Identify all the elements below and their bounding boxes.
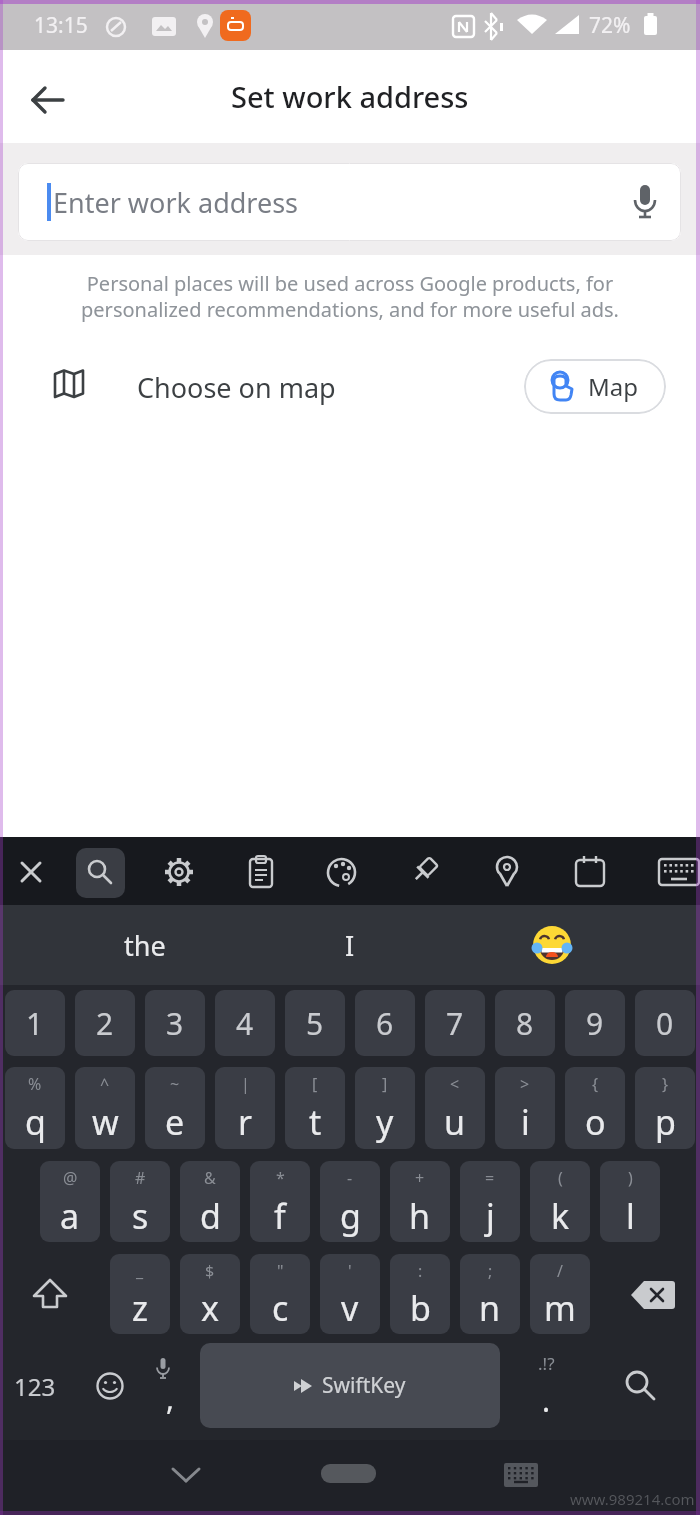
staticText: ; bbox=[488, 1260, 493, 1282]
button[interactable] bbox=[80, 1344, 140, 1428]
staticText: " bbox=[277, 1260, 284, 1282]
button[interactable]: / bbox=[530, 1254, 590, 1334]
button[interactable]: ( bbox=[530, 1161, 590, 1242]
button[interactable]: _ bbox=[110, 1254, 170, 1334]
button[interactable]: Enter work address bbox=[18, 163, 681, 241]
button[interactable] bbox=[650, 849, 700, 895]
staticText: | bbox=[241, 1073, 250, 1095]
button[interactable]: | bbox=[215, 1067, 275, 1149]
button[interactable] bbox=[160, 1450, 212, 1502]
button[interactable] bbox=[156, 849, 202, 895]
button[interactable] bbox=[495, 1450, 547, 1502]
button[interactable] bbox=[8, 849, 54, 895]
button[interactable]: + bbox=[390, 1161, 450, 1242]
button[interactable]: 0 bbox=[635, 990, 695, 1056]
button[interactable]: # bbox=[110, 1161, 170, 1242]
button[interactable]: ] bbox=[355, 1067, 415, 1149]
button[interactable]: = bbox=[460, 1161, 520, 1242]
staticText: ] bbox=[382, 1073, 388, 1095]
button[interactable]: the bbox=[39, 905, 251, 985]
staticText: .!? bbox=[538, 1352, 555, 1375]
button[interactable] bbox=[321, 1464, 376, 1483]
staticText: q bbox=[25, 1099, 46, 1145]
staticText: ) bbox=[628, 1167, 633, 1189]
staticText: 3 bbox=[166, 1003, 184, 1044]
button[interactable]: 2 bbox=[75, 990, 135, 1056]
staticText: I bbox=[345, 927, 355, 964]
button[interactable]: SwiftKey bbox=[200, 1343, 500, 1428]
button[interactable]: Map bbox=[524, 359, 666, 414]
staticText: { bbox=[592, 1073, 599, 1095]
button[interactable]: 4 bbox=[215, 990, 275, 1056]
staticText: 0 bbox=[656, 1003, 674, 1044]
button[interactable]: .!? bbox=[510, 1344, 582, 1428]
staticText: g bbox=[340, 1193, 361, 1239]
button[interactable]: 6 bbox=[355, 990, 415, 1056]
staticText: Set work address bbox=[231, 77, 469, 116]
button[interactable]: I bbox=[251, 905, 449, 985]
button[interactable]: * bbox=[250, 1161, 310, 1242]
staticText: Choose on map bbox=[137, 369, 336, 406]
button[interactable] bbox=[319, 849, 365, 895]
button[interactable]: Choose on map bbox=[30, 352, 480, 422]
staticText: u bbox=[444, 1099, 466, 1145]
button[interactable]: > bbox=[495, 1067, 555, 1149]
button[interactable]: & bbox=[180, 1161, 240, 1242]
button[interactable] bbox=[484, 849, 530, 895]
button[interactable]: ) bbox=[600, 1161, 660, 1242]
staticText: } bbox=[662, 1073, 669, 1095]
button[interactable]: $ bbox=[180, 1254, 240, 1334]
button[interactable]: [ bbox=[285, 1067, 345, 1149]
staticText: m bbox=[544, 1285, 576, 1331]
button[interactable] bbox=[449, 905, 655, 985]
button[interactable]: 7 bbox=[425, 990, 485, 1056]
staticText: ( bbox=[558, 1167, 563, 1189]
button[interactable]: % bbox=[5, 1067, 65, 1149]
button[interactable] bbox=[610, 1254, 695, 1334]
staticText: _ bbox=[136, 1260, 144, 1282]
staticText: Enter work address bbox=[53, 184, 299, 221]
button[interactable]: 8 bbox=[495, 990, 555, 1056]
staticText: n bbox=[479, 1285, 501, 1331]
button[interactable]: 5 bbox=[285, 990, 345, 1056]
button[interactable]: : bbox=[390, 1254, 450, 1334]
staticText: d bbox=[200, 1193, 221, 1239]
button[interactable]: ^ bbox=[75, 1067, 135, 1149]
button[interactable]: { bbox=[565, 1067, 625, 1149]
button[interactable]: 123 bbox=[5, 1344, 65, 1428]
button[interactable]: ' bbox=[320, 1254, 380, 1334]
button[interactable]: 9 bbox=[565, 990, 625, 1056]
button[interactable]: ; bbox=[460, 1254, 520, 1334]
staticText: www.989214.com bbox=[570, 1489, 695, 1509]
staticText: b bbox=[410, 1285, 431, 1331]
button[interactable]: 3 bbox=[145, 990, 205, 1056]
button[interactable] bbox=[238, 849, 284, 895]
button[interactable] bbox=[567, 849, 613, 895]
button[interactable] bbox=[20, 72, 76, 128]
staticText: 72% bbox=[589, 11, 631, 40]
staticText: w bbox=[92, 1099, 119, 1145]
staticText: < bbox=[450, 1073, 460, 1095]
staticText: # bbox=[135, 1167, 146, 1189]
staticText: 8 bbox=[516, 1003, 534, 1044]
button[interactable]: , bbox=[145, 1344, 195, 1428]
button[interactable]: " bbox=[250, 1254, 310, 1334]
staticText: @ bbox=[63, 1167, 78, 1189]
button[interactable]: 1 bbox=[5, 990, 65, 1056]
button[interactable]: ~ bbox=[145, 1067, 205, 1149]
button[interactable] bbox=[10, 1254, 90, 1334]
staticText: - bbox=[347, 1167, 353, 1189]
button[interactable] bbox=[605, 1344, 677, 1428]
staticText: 6 bbox=[376, 1003, 394, 1044]
button[interactable] bbox=[401, 849, 447, 895]
button[interactable]: } bbox=[635, 1067, 695, 1149]
staticText: i bbox=[521, 1099, 530, 1145]
button[interactable]: - bbox=[320, 1161, 380, 1242]
staticText: = bbox=[485, 1167, 495, 1189]
staticText: $ bbox=[205, 1260, 215, 1282]
button[interactable]: @ bbox=[40, 1161, 100, 1242]
button[interactable] bbox=[620, 178, 670, 228]
button[interactable]: < bbox=[425, 1067, 485, 1149]
staticText: , bbox=[166, 1378, 175, 1419]
button[interactable] bbox=[76, 848, 125, 898]
